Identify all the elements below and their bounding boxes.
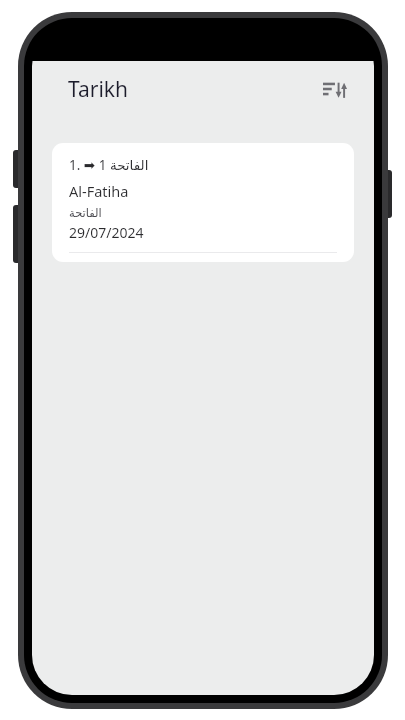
staticText: 29/07/2024 — [69, 223, 144, 242]
staticText: Tarikh — [68, 75, 129, 104]
staticText: الفاتحة — [69, 206, 102, 219]
button[interactable]: Sort — [312, 68, 356, 112]
staticText: Al-Fatiha — [69, 181, 129, 201]
button[interactable]: 1. ➡ 1 الفاتحة — [52, 143, 354, 262]
staticText: 1. ➡ 1 الفاتحة — [69, 156, 149, 174]
